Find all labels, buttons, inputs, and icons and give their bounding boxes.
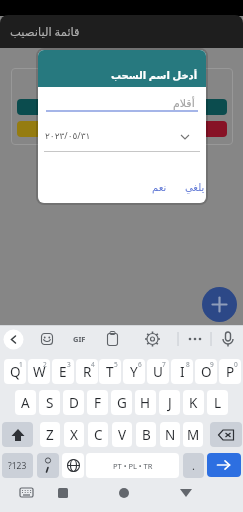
button[interactable] <box>37 329 57 349</box>
button[interactable]: يلغي <box>179 176 206 200</box>
staticText: D <box>69 394 79 412</box>
button[interactable] <box>142 329 162 349</box>
staticText: R <box>83 363 92 381</box>
staticText: أدخل اسم السحب <box>111 68 198 82</box>
staticText: C <box>94 426 103 444</box>
button[interactable] <box>42 124 202 148</box>
staticText: 6 <box>138 360 142 369</box>
button[interactable] <box>185 329 205 349</box>
button[interactable] <box>110 483 138 509</box>
button[interactable] <box>49 483 77 509</box>
button[interactable] <box>210 422 242 447</box>
staticText: V <box>118 426 127 444</box>
button[interactable]: Z <box>40 422 60 447</box>
button[interactable]: A <box>15 390 36 415</box>
staticText: 8 <box>186 360 190 369</box>
button[interactable]: T <box>99 359 121 384</box>
button[interactable]: U <box>147 359 169 384</box>
button[interactable]: K <box>183 390 204 415</box>
button[interactable]: V <box>112 422 132 447</box>
button[interactable]: W <box>28 359 50 384</box>
staticText: G <box>117 394 127 412</box>
button[interactable]: G <box>111 390 132 415</box>
staticText: T <box>106 363 114 381</box>
staticText: O <box>201 363 212 381</box>
staticText: GIF <box>73 334 86 344</box>
staticText: 7 <box>162 360 166 369</box>
staticText: H <box>140 394 151 412</box>
button[interactable]: Q <box>4 359 26 384</box>
button[interactable] <box>202 287 237 322</box>
button[interactable]: نعم <box>145 176 173 200</box>
button[interactable] <box>207 453 241 477</box>
button[interactable]: ?123 <box>2 453 33 478</box>
staticText: Z <box>46 426 54 444</box>
staticText: 4 <box>91 360 95 369</box>
staticText: 5 <box>114 360 118 369</box>
staticText: X <box>70 426 78 444</box>
button[interactable]: . <box>183 453 204 478</box>
button[interactable] <box>3 329 24 350</box>
staticText: 0 <box>234 360 238 369</box>
button[interactable]: D <box>63 390 84 415</box>
button[interactable]: F <box>87 390 108 415</box>
staticText: L <box>214 394 222 412</box>
button[interactable]: M <box>183 422 203 447</box>
button[interactable]: L <box>207 390 228 415</box>
button[interactable] <box>102 329 122 349</box>
staticText: A <box>21 394 30 412</box>
staticText: أقلام <box>173 97 195 110</box>
staticText: N <box>165 426 176 444</box>
button[interactable] <box>218 329 238 349</box>
button[interactable]: J <box>159 390 180 415</box>
staticText: 9 <box>210 360 214 369</box>
staticText: قائمة اليانصيب <box>10 24 80 40</box>
button[interactable]: PT • PL • TR <box>86 453 179 478</box>
button[interactable]: O <box>195 359 217 384</box>
button[interactable]: I <box>171 359 193 384</box>
staticText: K <box>189 394 198 412</box>
button[interactable] <box>172 483 200 509</box>
staticText: 2 <box>43 360 47 369</box>
button[interactable] <box>37 453 59 478</box>
staticText: 1 <box>19 360 23 369</box>
button[interactable] <box>62 453 84 478</box>
staticText: F <box>94 394 102 412</box>
staticText: S <box>46 394 54 412</box>
staticText: W <box>33 363 46 381</box>
button[interactable] <box>14 485 40 507</box>
button[interactable]: B <box>136 422 156 447</box>
staticText: E <box>59 363 67 381</box>
staticText: U <box>153 363 163 381</box>
button[interactable]: H <box>135 390 156 415</box>
staticText: يلغي <box>185 182 205 194</box>
staticText: J <box>168 394 172 412</box>
button[interactable]: S <box>39 390 60 415</box>
staticText: ٢٠٢٣/٠٥/٣١ <box>45 129 91 141</box>
staticText: نعم <box>152 182 167 194</box>
button[interactable]: N <box>160 422 180 447</box>
staticText: PT • PL • TR <box>113 461 153 471</box>
staticText: Y <box>130 363 138 381</box>
button[interactable]: أقلام <box>38 94 206 112</box>
staticText: Q <box>10 363 21 381</box>
button[interactable]: GIF <box>70 327 88 351</box>
staticText: B <box>142 426 151 444</box>
button[interactable]: X <box>64 422 84 447</box>
staticText: M <box>187 426 200 444</box>
staticText: P <box>226 363 235 381</box>
button[interactable]: R <box>76 359 98 384</box>
button[interactable]: Y <box>123 359 145 384</box>
button[interactable]: C <box>88 422 108 447</box>
staticText: . <box>192 458 195 473</box>
staticText: ?123 <box>8 460 27 472</box>
button[interactable]: P <box>219 359 241 384</box>
button[interactable] <box>2 422 33 447</box>
button[interactable]: E <box>52 359 74 384</box>
staticText: 3 <box>67 360 71 369</box>
staticText: I <box>180 363 185 381</box>
